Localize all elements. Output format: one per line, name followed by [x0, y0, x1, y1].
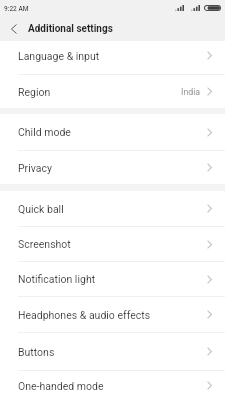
- staticText: Screenshot: [18, 238, 71, 250]
- button[interactable]: Child mode: [0, 114, 225, 150]
- button[interactable]: Region: [0, 75, 225, 108]
- button[interactable]: Notification light: [0, 262, 225, 296]
- button[interactable]: Buttons: [0, 333, 225, 370]
- button[interactable]: Back: [4, 16, 23, 41]
- staticText: Quick ball: [18, 203, 64, 215]
- staticText: 9:22 AM: [4, 5, 29, 13]
- button[interactable]: One-handed mode: [0, 371, 225, 400]
- staticText: Notification light: [18, 273, 96, 285]
- button[interactable]: Language & input: [0, 41, 225, 74]
- button[interactable]: Quick ball: [0, 191, 225, 226]
- staticText: Buttons: [18, 346, 55, 358]
- button[interactable]: Headphones & audio effects: [0, 297, 225, 332]
- button[interactable]: Privacy: [0, 151, 225, 184]
- staticText: Region: [18, 86, 51, 98]
- staticText: Additional settings: [28, 23, 113, 35]
- staticText: Headphones & audio effects: [18, 309, 151, 321]
- staticText: Privacy: [18, 162, 52, 174]
- staticText: Child mode: [18, 126, 71, 138]
- staticText: One-handed mode: [18, 380, 104, 392]
- staticText: Language & input: [18, 50, 100, 62]
- button[interactable]: Screenshot: [0, 227, 225, 261]
- staticText: India: [181, 87, 201, 97]
